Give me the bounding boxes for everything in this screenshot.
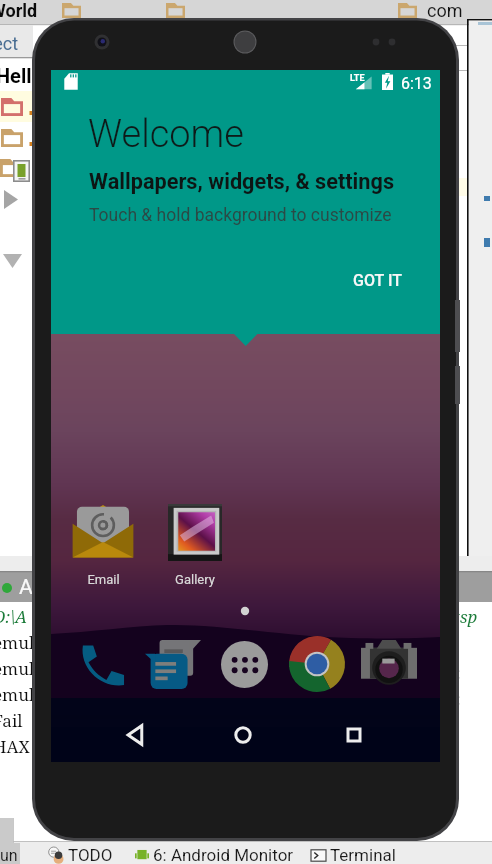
staticText: World xyxy=(0,0,38,21)
staticText: etsp xyxy=(445,605,478,628)
staticText: Wallpapers, widgets, & settings xyxy=(89,169,395,194)
staticText: 6:13 xyxy=(401,74,432,93)
staticText: GOT IT xyxy=(353,271,402,290)
staticText: ject xyxy=(0,33,19,54)
staticText: TODO xyxy=(68,845,113,864)
staticText: AV xyxy=(19,575,46,600)
button[interactable]: Back xyxy=(116,715,156,755)
staticText: HAX xyxy=(0,735,30,758)
staticText: emul. xyxy=(0,631,39,654)
staticText: Email xyxy=(87,572,120,587)
staticText: emul. xyxy=(0,683,39,706)
button[interactable]: GOT IT xyxy=(341,260,414,301)
button[interactable]: Apps xyxy=(214,634,274,694)
button[interactable]: Gallery xyxy=(153,500,237,592)
staticText: Fail xyxy=(0,709,23,732)
staticText: emul. xyxy=(0,657,39,680)
staticText: t:: xyxy=(445,687,461,710)
staticText: LTE xyxy=(350,73,365,84)
button[interactable]: Email xyxy=(61,500,145,592)
button[interactable]: Chrome xyxy=(287,634,347,694)
staticText: 6: Android Monitor xyxy=(153,845,294,864)
staticText: Welcome xyxy=(88,112,244,157)
staticText: t:: xyxy=(445,661,461,684)
staticText: un xyxy=(0,846,18,864)
button[interactable]: Messaging xyxy=(143,634,203,694)
staticText: com xyxy=(427,0,463,21)
button[interactable]: Phone xyxy=(71,634,131,694)
staticText: Hell xyxy=(0,64,32,87)
staticText: Touch & hold background to customize xyxy=(89,205,392,226)
staticText: D:\A xyxy=(0,605,28,628)
button[interactable]: Home xyxy=(223,715,263,755)
staticText: Terminal xyxy=(330,845,396,864)
button[interactable]: Camera xyxy=(359,634,419,694)
button[interactable]: Recents xyxy=(334,715,374,755)
staticText: Gallery xyxy=(175,572,215,587)
